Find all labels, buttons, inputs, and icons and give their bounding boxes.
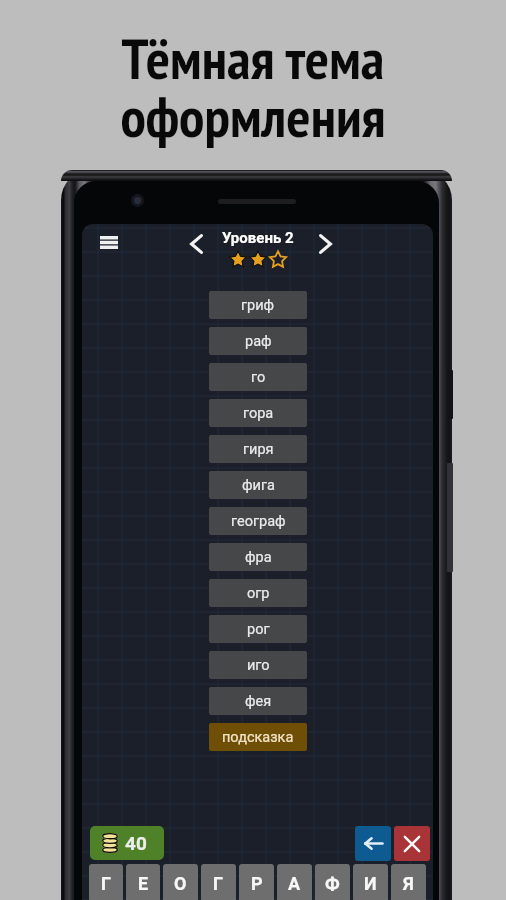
staticText: Е <box>138 873 149 894</box>
staticText: гора <box>243 405 274 422</box>
staticText: фра <box>245 549 272 566</box>
button[interactable]: го <box>209 363 307 391</box>
button[interactable]: Next level <box>306 225 344 263</box>
staticText: фига <box>242 477 275 494</box>
staticText: 40 <box>125 832 147 854</box>
button[interactable]: Г <box>89 864 123 900</box>
button[interactable]: Е <box>126 864 160 900</box>
staticText: Тёмная тема оформления <box>120 21 386 152</box>
staticText: О <box>174 873 187 894</box>
staticText: Р <box>251 873 263 894</box>
button[interactable]: Я <box>391 864 426 900</box>
button[interactable]: 40 <box>90 826 164 860</box>
staticText: рог <box>247 621 270 638</box>
staticText: огр <box>247 585 270 602</box>
button[interactable]: Ф <box>315 864 350 900</box>
button[interactable]: огр <box>209 579 307 607</box>
button[interactable]: гриф <box>209 291 307 319</box>
staticText: подсказка <box>222 729 294 746</box>
staticText: Ф <box>325 873 340 894</box>
button[interactable]: И <box>353 864 388 900</box>
staticText: го <box>251 369 266 386</box>
button[interactable]: Р <box>239 864 274 900</box>
button[interactable]: фига <box>209 471 307 499</box>
staticText: И <box>364 873 377 894</box>
staticText: иго <box>247 657 270 674</box>
button[interactable]: А <box>277 864 312 900</box>
staticText: географ <box>231 513 286 530</box>
staticText: Уровень 2 <box>222 229 294 247</box>
staticText: гриф <box>241 297 275 314</box>
button[interactable]: Г <box>201 864 236 900</box>
staticText: Г <box>213 873 224 894</box>
staticText: А <box>288 873 301 894</box>
staticText: Я <box>403 873 414 894</box>
button[interactable]: фея <box>209 687 307 715</box>
staticText: раф <box>245 333 272 350</box>
button[interactable]: Backspace <box>355 826 391 861</box>
button[interactable]: Menu <box>90 224 127 261</box>
button[interactable]: подсказка <box>209 723 307 751</box>
button[interactable]: иго <box>209 651 307 679</box>
button[interactable]: Previous level <box>177 225 215 263</box>
staticText: фея <box>245 693 272 710</box>
button[interactable]: фра <box>209 543 307 571</box>
button[interactable]: гора <box>209 399 307 427</box>
button[interactable]: О <box>163 864 198 900</box>
button[interactable]: рог <box>209 615 307 643</box>
button[interactable]: гиря <box>209 435 307 463</box>
staticText: Г <box>101 873 112 894</box>
button[interactable]: Clear <box>394 826 430 861</box>
staticText: гиря <box>243 441 274 458</box>
button[interactable]: раф <box>209 327 307 355</box>
button[interactable]: географ <box>209 507 307 535</box>
